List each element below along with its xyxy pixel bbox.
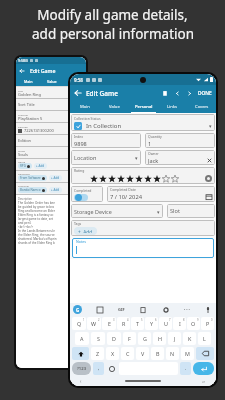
staticText: GIF — [118, 307, 125, 312]
staticText: + Add — [51, 188, 60, 192]
button[interactable]: L — [198, 332, 211, 345]
button[interactable]: Comma — [93, 362, 104, 375]
button[interactable]: Back — [72, 87, 84, 99]
button[interactable]: Collection Status — [71, 114, 215, 131]
staticText: Collection Status — [74, 116, 101, 121]
button[interactable]: Star 3 — [107, 174, 116, 183]
button[interactable]: K — [183, 332, 196, 345]
button[interactable]: G — [138, 332, 151, 345]
button[interactable]: Completed Date — [107, 186, 215, 202]
button[interactable]: Google — [73, 305, 82, 314]
button[interactable]: I — [173, 317, 186, 330]
button[interactable]: A — [75, 332, 89, 345]
button[interactable]: Rating — [71, 167, 215, 184]
staticText: Edit Game — [30, 67, 56, 74]
button[interactable]: N — [166, 347, 179, 360]
button[interactable]: Quantity — [145, 133, 215, 148]
button[interactable]: Star 5 — [125, 174, 134, 183]
button[interactable]: D — [107, 332, 121, 345]
staticText: Y — [150, 320, 154, 327]
button[interactable]: T — [131, 317, 144, 330]
staticText: 0 — [211, 318, 213, 322]
button[interactable]: Settings — [161, 305, 171, 315]
button[interactable]: Value — [100, 101, 129, 113]
button[interactable]: Star 7 — [143, 174, 152, 183]
button[interactable]: Star 6 — [134, 174, 143, 183]
staticText: ▾ — [209, 123, 212, 129]
staticText: shards of the Elden Ring b — [18, 241, 55, 245]
button[interactable]: Star 10 — [170, 174, 179, 183]
button[interactable]: Previous — [172, 88, 183, 99]
button[interactable]: Next — [184, 88, 195, 99]
button[interactable]: Personal — [129, 101, 158, 113]
staticText: The Golden Order has bee — [18, 201, 55, 205]
staticText: Edition — [18, 138, 32, 143]
button[interactable]: E — [102, 317, 116, 330]
button[interactable]: M — [181, 347, 194, 360]
button[interactable]: Star 1 — [89, 174, 98, 183]
staticText: Modify all game details, — [37, 6, 188, 24]
button[interactable]: Owner — [145, 150, 215, 165]
button[interactable]: Completed toggle — [74, 194, 88, 201]
button[interactable]: Main — [70, 101, 100, 113]
button[interactable]: H — [153, 332, 166, 345]
button[interactable]: Tags — [71, 220, 215, 236]
button[interactable]: F — [123, 332, 136, 345]
button[interactable]: Sticker — [95, 305, 105, 315]
button[interactable]: S — [91, 332, 105, 345]
button[interactable]: Y — [145, 317, 158, 330]
button[interactable]: GIF — [118, 307, 125, 312]
button[interactable]: P — [201, 317, 214, 330]
button[interactable]: More — [184, 307, 190, 312]
button[interactable]: ?123 — [72, 362, 91, 375]
button[interactable]: Period — [180, 362, 191, 375]
button[interactable]: Z — [91, 347, 104, 360]
button[interactable]: Storage Device — [71, 204, 163, 218]
button[interactable]: J — [168, 332, 181, 345]
button[interactable]: C — [121, 347, 134, 360]
staticText: ‹ — [80, 378, 82, 384]
staticText: W — [91, 320, 97, 327]
button[interactable]: Covers — [187, 101, 216, 113]
staticText: Rating — [74, 168, 85, 173]
button[interactable]: Delete — [159, 87, 171, 99]
button[interactable]: Voice input — [203, 305, 213, 315]
staticText: Ring and become an Elder — [18, 209, 55, 213]
staticText: • • • — [184, 307, 190, 312]
button[interactable]: V — [136, 347, 149, 360]
staticText: U — [164, 320, 168, 327]
button[interactable]: Star 4 — [116, 174, 125, 183]
button[interactable]: Index — [71, 133, 141, 148]
staticText: Pe — [72, 79, 77, 84]
button[interactable]: Star 9 — [161, 174, 170, 183]
button[interactable]: Q — [72, 317, 86, 330]
button[interactable]: Enter — [193, 362, 214, 375]
button[interactable]: Clipboard — [138, 305, 148, 315]
button[interactable]: W — [87, 317, 101, 330]
staticText: ?123 — [77, 366, 87, 372]
staticText: be guided by grace to bra — [18, 205, 55, 209]
button[interactable]: X — [106, 347, 119, 360]
staticText: 9898 — [74, 140, 87, 147]
button[interactable]: + Add — [74, 227, 97, 235]
staticText: Location — [74, 154, 97, 162]
button[interactable]: Links — [158, 101, 187, 113]
button[interactable]: Star 8 — [152, 174, 161, 183]
button[interactable]: B — [151, 347, 164, 360]
button[interactable]: Location — [71, 150, 141, 165]
button[interactable]: U — [159, 317, 172, 330]
staticText: PlayStation 5 — [18, 116, 43, 121]
button[interactable]: O — [187, 317, 200, 330]
button[interactable]: R — [117, 317, 130, 330]
button[interactable]: Emoji — [106, 362, 117, 375]
button[interactable]: Completed — [71, 186, 103, 202]
button[interactable]: Slot — [167, 204, 215, 218]
staticText: 2 — [98, 318, 100, 322]
button[interactable]: Backspace — [196, 347, 214, 360]
button[interactable]: Shift — [72, 347, 89, 360]
staticText: Completed Date — [110, 187, 136, 192]
button[interactable]: Star 2 — [98, 174, 107, 183]
staticText: P — [206, 320, 210, 327]
button[interactable]: DONE — [196, 90, 214, 97]
